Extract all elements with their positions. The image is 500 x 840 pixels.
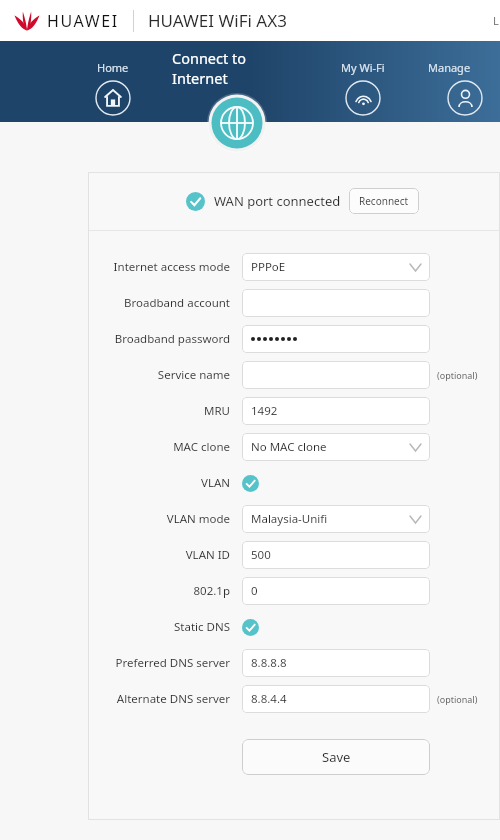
staticText: L <box>493 13 499 28</box>
staticText: PPPoE <box>251 259 286 275</box>
button[interactable]: No MAC clone <box>242 433 430 461</box>
staticText: HUAWEI <box>47 10 119 32</box>
button[interactable]: Malaysia-Unifi <box>242 505 430 533</box>
button[interactable]: Save <box>242 739 430 775</box>
button[interactable]: 8.8.8.8 <box>242 649 430 677</box>
staticText: My Wi-Fi <box>341 60 385 75</box>
staticText: Home <box>97 60 129 75</box>
button[interactable]: Connect to Internet <box>172 48 302 153</box>
staticText: 802.1p <box>193 583 230 599</box>
button[interactable]: 500 <box>242 541 430 569</box>
staticText: Broadband password <box>114 331 230 347</box>
button[interactable]: Manage Device <box>428 60 500 122</box>
staticText: Internet access mode <box>113 259 230 275</box>
button[interactable]: Home <box>84 60 141 122</box>
staticText: (optional) <box>437 369 478 381</box>
staticText: Malaysia-Unifi <box>251 511 328 527</box>
button[interactable] <box>242 361 430 389</box>
staticText: No MAC clone <box>251 439 327 455</box>
staticText: Service name <box>157 367 230 383</box>
staticText: Preferred DNS server <box>115 655 230 671</box>
staticText: Static DNS <box>174 619 230 635</box>
staticText: VLAN ID <box>185 547 230 563</box>
staticText: (optional) <box>437 693 478 705</box>
staticText: 1492 <box>251 403 278 419</box>
button[interactable]: L <box>493 13 500 28</box>
button[interactable]: My Wi-Fi <box>332 60 394 122</box>
button[interactable] <box>242 325 430 353</box>
staticText: Manage Device <box>428 60 500 75</box>
button[interactable]: 0 <box>242 577 430 605</box>
staticText: Broadband account <box>124 295 230 311</box>
button[interactable] <box>242 289 430 317</box>
button[interactable]: PPPoE <box>242 253 430 281</box>
staticText: Alternate DNS server <box>116 691 230 707</box>
button[interactable]: 8.8.4.4 <box>242 685 430 713</box>
staticText: Save <box>322 748 351 766</box>
staticText: MAC clone <box>173 439 230 455</box>
staticText: VLAN mode <box>166 511 230 527</box>
staticText: 0 <box>251 583 258 599</box>
staticText: MRU <box>204 403 230 419</box>
button[interactable]: 1492 <box>242 397 430 425</box>
staticText: 500 <box>251 547 271 563</box>
staticText: HUAWEI WiFi AX3 <box>148 9 287 32</box>
staticText: Connect to Internet <box>172 48 302 88</box>
staticText: 8.8.8.8 <box>251 655 287 671</box>
staticText: Reconnect <box>359 194 409 208</box>
staticText: WAN port connected <box>214 192 341 210</box>
staticText: 8.8.4.4 <box>251 691 287 707</box>
button[interactable]: Reconnect <box>349 188 419 214</box>
staticText: VLAN <box>200 475 230 491</box>
